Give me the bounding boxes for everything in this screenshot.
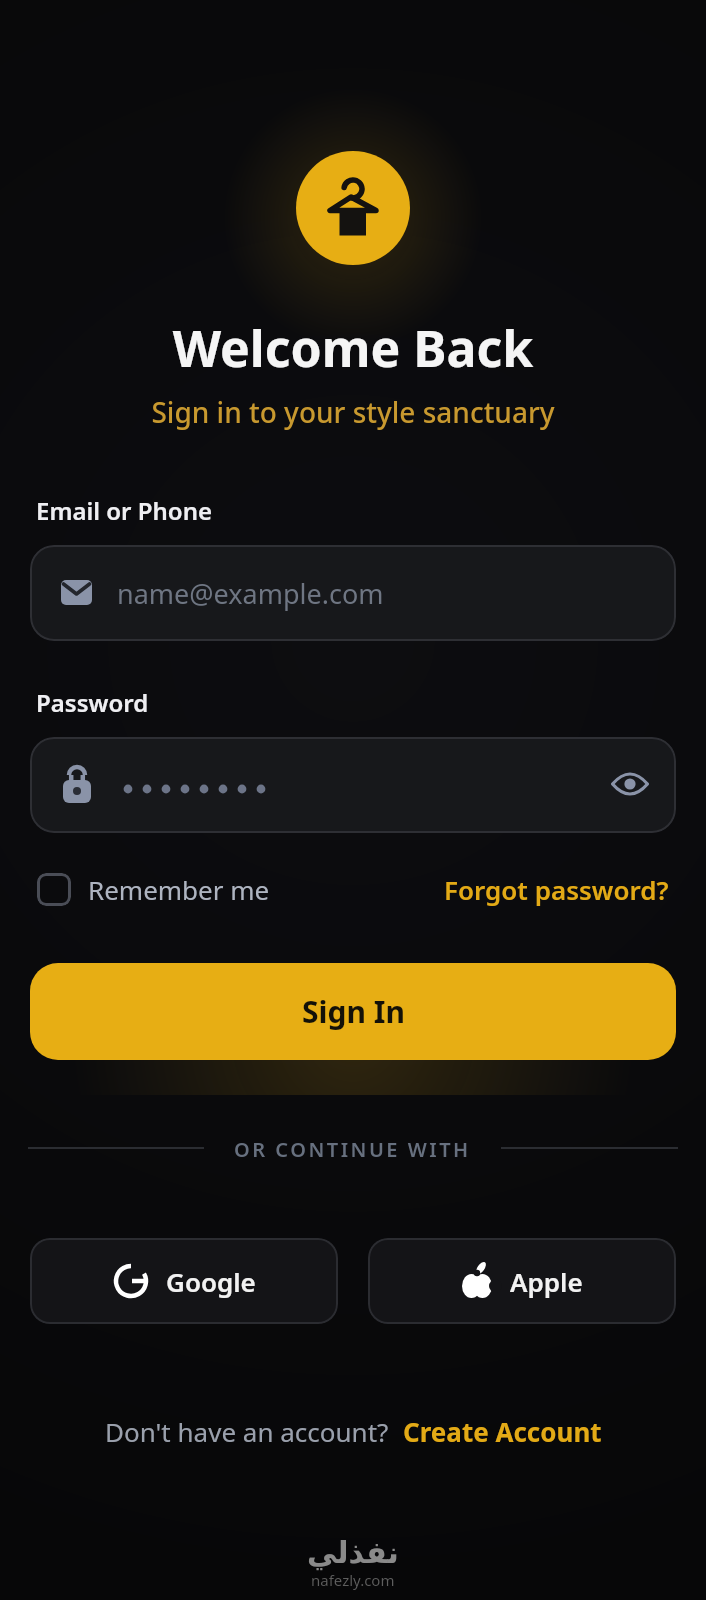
- button[interactable]: Remember me: [37, 872, 270, 907]
- staticText: Don't have an account?: [105, 1414, 389, 1449]
- staticText: Sign In: [302, 991, 405, 1032]
- button[interactable]: Sign In: [30, 963, 676, 1060]
- button[interactable]: Google: [30, 1238, 338, 1324]
- staticText: Google: [166, 1264, 256, 1299]
- staticText: name@example.com: [117, 575, 384, 612]
- staticText: Welcome Back: [0, 314, 706, 382]
- staticText: Apple: [510, 1264, 583, 1299]
- staticText: Sign in to your style sanctuary: [0, 393, 706, 431]
- staticText: نفذلي: [307, 1535, 399, 1570]
- staticText: Remember me: [88, 872, 270, 907]
- staticText: Email or Phone: [36, 494, 212, 527]
- button[interactable]: [296, 151, 410, 265]
- button[interactable]: [30, 737, 676, 833]
- staticText: nafezly.com: [311, 1570, 395, 1590]
- button[interactable]: Create Account: [403, 1414, 602, 1449]
- staticText: OR CONTINUE WITH: [234, 1136, 471, 1160]
- staticText: Forgot password?: [444, 872, 669, 907]
- button[interactable]: Apple: [368, 1238, 676, 1324]
- staticText: Password: [36, 686, 149, 719]
- button[interactable]: Forgot password?: [444, 872, 669, 907]
- button[interactable]: name@example.com: [30, 545, 676, 641]
- staticText: Create Account: [403, 1414, 602, 1449]
